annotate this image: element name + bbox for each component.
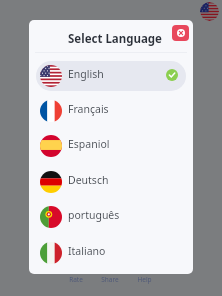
button[interactable]: Italiano — [36, 238, 186, 268]
button[interactable]: Deutsch — [36, 167, 186, 197]
button[interactable]: Rate — [59, 273, 93, 285]
staticText: Français — [68, 102, 109, 116]
staticText: English — [68, 67, 104, 81]
button[interactable]: Help — [127, 273, 161, 285]
staticText: Italiano — [68, 244, 106, 258]
button[interactable]: Share — [93, 273, 127, 285]
staticText: Share — [101, 275, 119, 284]
button[interactable]: English — [36, 61, 186, 91]
staticText: Rate — [69, 275, 83, 284]
button[interactable]: português — [36, 202, 186, 232]
staticText: Select Language — [68, 31, 162, 47]
button[interactable]: Close — [172, 25, 189, 41]
staticText: português — [68, 208, 120, 222]
staticText: Help — [137, 275, 152, 284]
staticText: Deutsch — [68, 173, 109, 187]
button[interactable]: Current language — [200, 2, 219, 21]
staticText: Espaniol — [68, 137, 110, 151]
button[interactable]: Français — [36, 96, 186, 126]
button[interactable]: Espaniol — [36, 131, 186, 161]
